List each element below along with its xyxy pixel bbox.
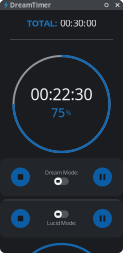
button[interactable]: Pause	[93, 167, 112, 186]
button[interactable]: Pause	[93, 209, 112, 228]
staticText: 00:22:30	[30, 83, 92, 105]
staticText: DreamTimer	[10, 1, 51, 9]
staticText: 00:30:00	[60, 17, 96, 29]
staticText: Dream Mode:	[45, 169, 78, 176]
button[interactable]: Close	[112, 0, 123, 10]
button[interactable]: Stop	[11, 209, 30, 228]
button[interactable]: Stop	[11, 167, 30, 186]
button[interactable]: Minimize	[101, 0, 112, 10]
button[interactable]: Dream Mode:	[54, 177, 69, 185]
staticText: 75	[51, 105, 65, 121]
staticText: %	[66, 108, 72, 117]
staticText: TOTAL:	[27, 17, 58, 29]
button[interactable]: Lucid Mode:	[54, 210, 69, 218]
staticText: Lucid Mode:	[47, 219, 76, 227]
